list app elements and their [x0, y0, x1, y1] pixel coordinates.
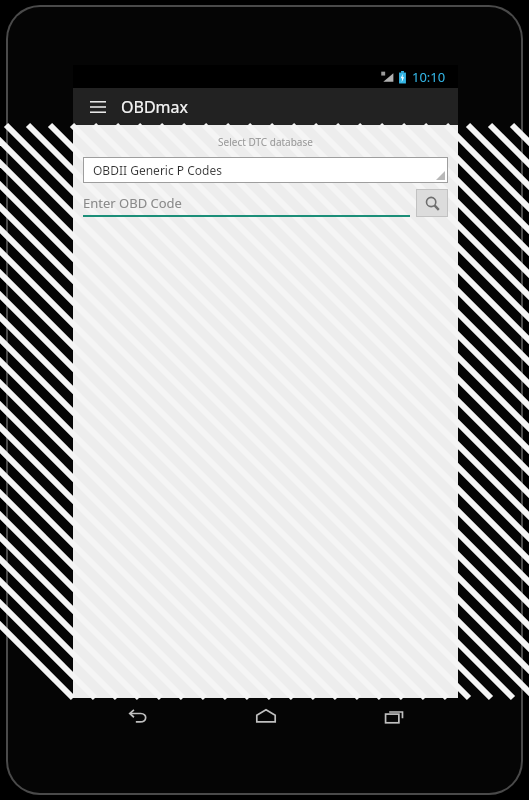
button[interactable]: Search: [416, 189, 448, 217]
button[interactable]: Back: [119, 698, 157, 734]
button[interactable]: OBDII Generic P Codes: [83, 157, 448, 183]
staticText: OBDmax: [121, 96, 188, 118]
button[interactable]: Home: [247, 698, 285, 734]
staticText: Enter OBD Code: [83, 194, 182, 212]
staticText: 10:10: [412, 68, 446, 86]
staticText: OBDII Generic P Codes: [93, 162, 222, 178]
button[interactable]: Enter OBD Code: [83, 189, 410, 217]
button[interactable]: Open navigation menu: [83, 92, 113, 122]
button[interactable]: Recent apps: [375, 698, 413, 734]
staticText: Select DTC database: [73, 135, 458, 149]
